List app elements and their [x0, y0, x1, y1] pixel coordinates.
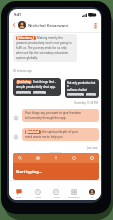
- staticText: #roadmap: [17, 91, 30, 94]
- button[interactable]: Profile photo: [18, 21, 26, 29]
- staticText: #tools: [87, 93, 95, 96]
- staticText: Just now: [87, 146, 98, 150]
- staticText: Nishchal Kesarwani: [28, 22, 69, 28]
- staticText: Yesterday 11:34 PM: [74, 101, 98, 105]
- staticText: #phase1: [34, 91, 45, 94]
- button[interactable]: Microphone: [52, 154, 60, 162]
- button[interactable]: Not only productive but a: [65, 79, 99, 98]
- staticText: the spiritual depth of your: [42, 130, 79, 134]
- staticText: You: [90, 196, 94, 199]
- staticText: @nishchay: [17, 80, 31, 84]
- staticText: Start typing...: [16, 169, 42, 174]
- button[interactable]: Collections: [65, 182, 83, 200]
- staticText: wellness chatbot: [67, 88, 88, 91]
- button[interactable]: You: [83, 182, 101, 200]
- staticText: simple productivity chat app.: [16, 85, 56, 89]
- button[interactable]: Back: [10, 21, 18, 29]
- staticText: mind wants me to help you: [25, 135, 63, 139]
- button[interactable]: @nishchal: [22, 128, 99, 141]
- staticText: first things first -: [33, 80, 56, 84]
- button[interactable]: @shantanu_ji: [13, 34, 77, 62]
- button[interactable]: More options: [91, 21, 99, 29]
- staticText: @nishchal: [26, 130, 40, 134]
- button[interactable]: Notes: [47, 182, 65, 200]
- button[interactable]: Attach: [70, 154, 78, 162]
- staticText: 9:41: [14, 12, 22, 17]
- staticText: Making merely the: [37, 36, 63, 40]
- staticText: @shantanu_ji: [17, 36, 35, 40]
- staticText: #inspiration: [68, 93, 83, 96]
- staticText: Your blogs say you want to give freedom …: [25, 111, 82, 120]
- staticText: Tasks: [35, 196, 41, 199]
- button[interactable]: Chat: [9, 182, 28, 200]
- staticText: Collections: [68, 196, 80, 199]
- staticText: Not only productive but a: [67, 81, 97, 87]
- button[interactable]: @nishchay: [13, 78, 61, 96]
- button[interactable]: Search: [16, 154, 24, 162]
- staticText: Chat: [16, 196, 21, 199]
- staticText: greatest productivity tool is not going …: [16, 41, 72, 60]
- button[interactable]: Tasks: [28, 182, 47, 200]
- staticText: 20 minutes ago: [13, 69, 32, 73]
- button[interactable]: Camera: [34, 154, 42, 162]
- staticText: Notes: [53, 196, 60, 199]
- button[interactable]: Emoji: [88, 154, 96, 162]
- button[interactable]: Your blogs say you want to give freedom …: [22, 109, 99, 122]
